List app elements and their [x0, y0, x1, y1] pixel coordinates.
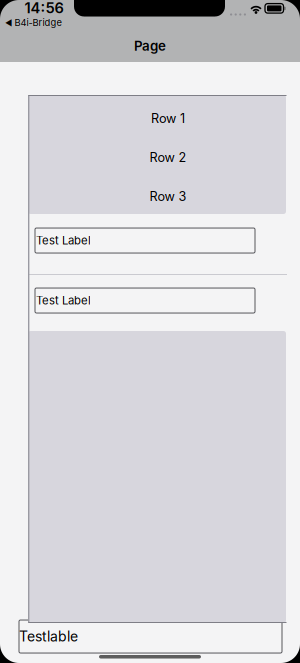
staticText: Row 2: [149, 150, 186, 165]
staticText: B4i-Bridge: [14, 17, 61, 28]
staticText: Page: [134, 38, 166, 54]
staticText: Test Label: [36, 234, 91, 247]
button[interactable]: Test Label: [35, 228, 255, 253]
staticText: Testlable: [19, 628, 78, 645]
staticText: ◀: [5, 18, 12, 27]
staticText: Row 1: [151, 111, 185, 126]
button[interactable]: Test Label: [35, 288, 255, 313]
staticText: Test Label: [36, 294, 91, 307]
button[interactable]: ◀: [0, 16, 65, 29]
staticText: Row 3: [149, 189, 186, 204]
staticText: 14:56: [24, 0, 63, 17]
button[interactable]: Testlable: [19, 620, 282, 653]
